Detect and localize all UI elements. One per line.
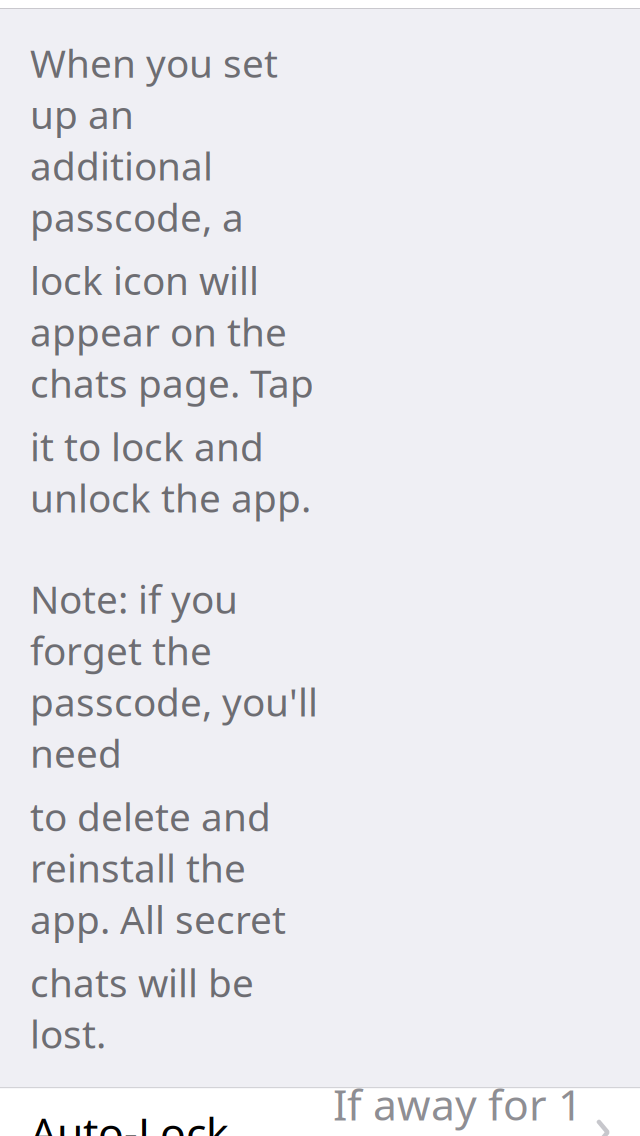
staticText: Note: if you forget the passcode, you'll…	[30, 573, 318, 779]
staticText: chats will be lost.	[30, 957, 254, 1059]
staticText: lock icon will appear on the chats page.…	[30, 254, 314, 408]
staticText: Auto-Lock	[30, 1104, 229, 1136]
staticText: When you set up an additional passcode, …	[30, 37, 278, 242]
staticText: it to lock and unlock the app.	[30, 420, 311, 523]
button[interactable]: Auto-Lock	[0, 1088, 640, 1136]
staticText: to delete and reinstall the app. All sec…	[30, 790, 286, 944]
staticText: If away for 1 hour	[333, 1076, 582, 1136]
